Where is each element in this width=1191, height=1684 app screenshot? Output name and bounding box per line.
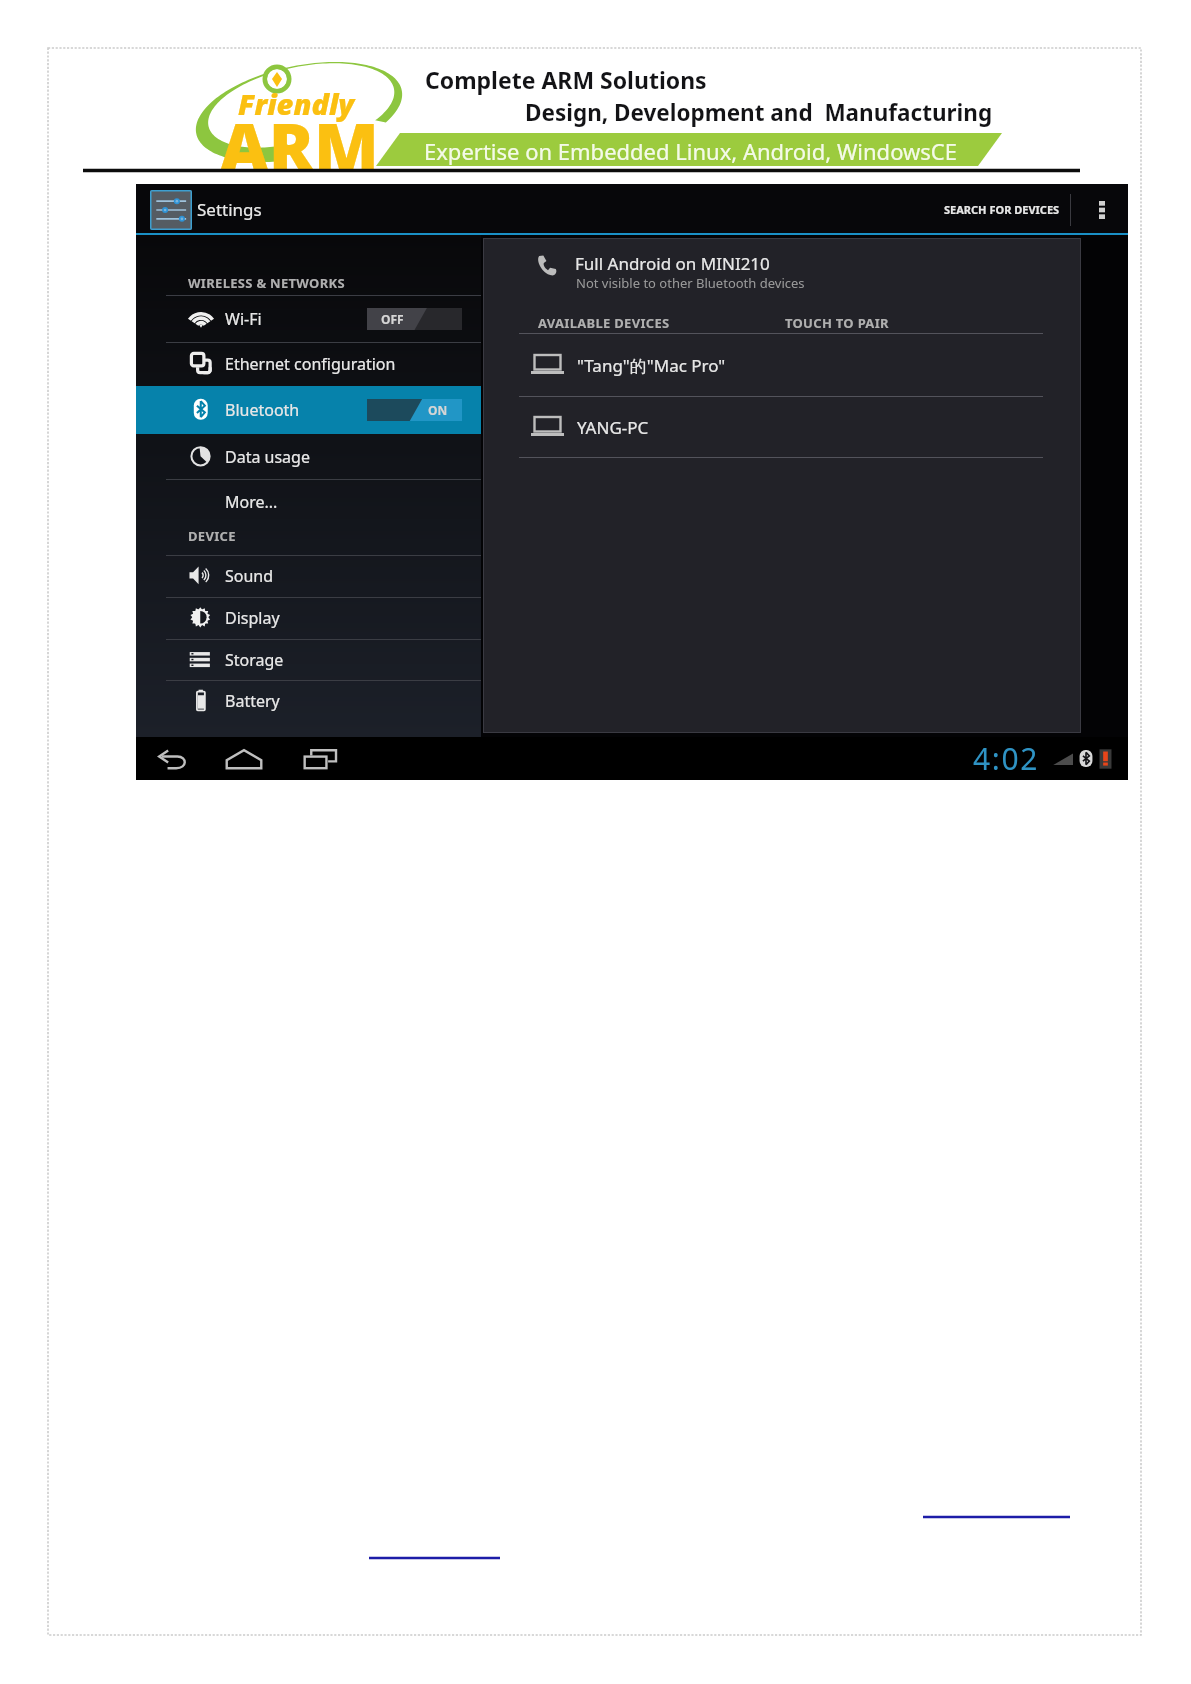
staticText: Design, Development and Manufacturing xyxy=(525,97,993,128)
staticText: DEVICE xyxy=(188,527,236,545)
button[interactable]: Storage xyxy=(136,639,481,680)
staticText: 4:02 xyxy=(973,738,1039,779)
button[interactable]: Data usage xyxy=(136,434,481,479)
button[interactable]: "Tang"的"Mac Pro" xyxy=(484,334,1080,396)
button[interactable]: Settings xyxy=(150,190,192,230)
button[interactable]: Sound xyxy=(136,555,481,597)
staticText: More... xyxy=(225,491,278,513)
button[interactable]: Full Android on MINI210 xyxy=(484,245,1080,315)
staticText: Data usage xyxy=(225,446,310,468)
button[interactable]: Bluetooth xyxy=(136,386,481,434)
staticText: Full Android on MINI210 xyxy=(575,252,770,275)
button[interactable]: SEARCH FOR DEVICES xyxy=(936,184,1068,235)
button[interactable]: More... xyxy=(136,479,481,524)
button[interactable]: YANG-PC xyxy=(484,397,1080,457)
button[interactable]: Display xyxy=(136,597,481,639)
staticText: Ethernet configuration xyxy=(225,353,396,375)
button[interactable]: More options xyxy=(1080,184,1124,235)
staticText: Wi-Fi xyxy=(225,308,262,330)
button[interactable]: Back xyxy=(150,739,194,779)
staticText: Complete ARM Solutions xyxy=(425,64,707,95)
staticText: ARM xyxy=(220,100,379,191)
button[interactable]: Ethernet configuration xyxy=(136,342,481,386)
button[interactable]: Battery xyxy=(136,680,481,722)
staticText: Bluetooth xyxy=(225,399,300,421)
staticText: Friendly xyxy=(238,84,355,123)
staticText: ON xyxy=(428,402,448,418)
staticText: WIRELESS & NETWORKS xyxy=(188,274,345,292)
staticText: Sound xyxy=(225,565,274,587)
button[interactable]: Recent apps xyxy=(298,739,342,779)
button[interactable]: Home xyxy=(222,739,266,779)
staticText: YANG-PC xyxy=(577,416,649,439)
staticText: "Tang"的"Mac Pro" xyxy=(577,354,726,377)
staticText: Expertise on Embedded Linux, Android, Wi… xyxy=(424,136,957,166)
staticText: Settings xyxy=(197,198,262,221)
staticText: Not visible to other Bluetooth devices xyxy=(576,274,805,292)
button[interactable]: Wi-Fi xyxy=(136,295,481,342)
staticText: SEARCH FOR DEVICES xyxy=(944,202,1060,217)
staticText: Storage xyxy=(225,649,284,671)
staticText: AVAILABLE DEVICES xyxy=(538,314,670,332)
staticText: TOUCH TO PAIR xyxy=(785,314,889,332)
staticText: Display xyxy=(225,607,280,629)
staticText: OFF xyxy=(381,311,404,327)
staticText: Battery xyxy=(225,690,280,712)
